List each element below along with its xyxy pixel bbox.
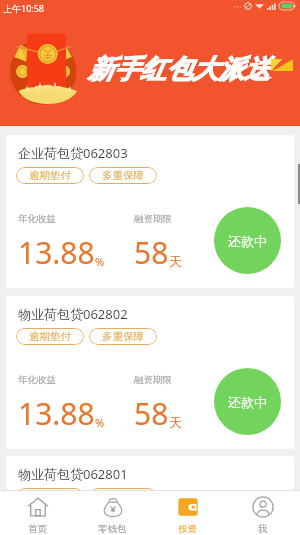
staticText: 年化收益 <box>18 213 56 225</box>
staticText: 逾期垫付 <box>29 169 71 182</box>
staticText: 上午10:58 <box>3 2 45 14</box>
button[interactable]: 还款中 <box>214 368 281 435</box>
staticText: 多重保障 <box>102 330 144 343</box>
staticText: 融资期限 <box>134 213 172 225</box>
button[interactable]: 物业荷包贷062801 <box>6 456 294 490</box>
staticText: 58 <box>134 232 169 273</box>
staticText: 逾期垫付 <box>29 330 71 343</box>
staticText: 年化收益 <box>18 374 56 386</box>
other: 首页 <box>27 496 49 518</box>
staticText: 首页 <box>28 523 47 535</box>
staticText: 13.88 <box>18 232 95 273</box>
staticText: 13.88 <box>18 393 95 434</box>
staticText: 融资期限 <box>134 374 172 386</box>
button[interactable]: 我 <box>225 491 300 535</box>
staticText: 物业荷包贷062801 <box>18 465 128 483</box>
button[interactable]: 企业荷包贷062803 <box>6 135 294 288</box>
staticText: 物业荷包贷062802 <box>18 305 128 323</box>
staticText: 企业荷包贷062803 <box>18 144 128 162</box>
staticText: 新手红包大派送 <box>88 53 270 86</box>
other: 投资 <box>177 496 199 518</box>
staticText: 多重保障 <box>102 169 144 182</box>
other: 零钱包 <box>102 496 124 518</box>
staticText: 还款中 <box>228 233 267 249</box>
staticText: 58 <box>134 393 169 434</box>
button[interactable]: 首页 <box>0 491 75 535</box>
button[interactable]: 零钱包 <box>75 491 150 535</box>
staticText: 投资 <box>178 523 197 535</box>
staticText: 天 <box>169 414 182 430</box>
staticText: 天 <box>169 253 182 269</box>
button[interactable]: 物业荷包贷062802 <box>6 296 294 449</box>
staticText: 还款中 <box>228 394 267 410</box>
button[interactable]: 还款中 <box>214 207 281 274</box>
staticText: 零钱包 <box>98 523 127 535</box>
staticText: % <box>95 254 105 269</box>
button[interactable]: 投资 <box>150 491 225 535</box>
other: 我 <box>252 496 274 518</box>
staticText: 我 <box>258 523 268 535</box>
staticText: % <box>95 415 105 430</box>
